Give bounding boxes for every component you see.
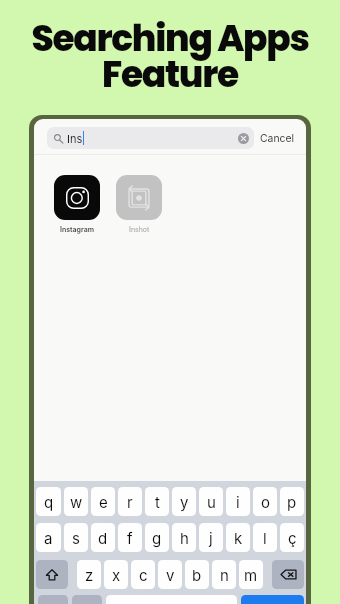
button[interactable]: Inshot (116, 175, 162, 233)
staticText: Instagram (60, 225, 95, 233)
button[interactable]: w (64, 487, 88, 516)
button[interactable]: u (199, 487, 223, 516)
staticText: g (152, 529, 162, 547)
button[interactable]: n (212, 560, 236, 589)
staticText: q (44, 493, 54, 511)
button[interactable]: Clear search text (238, 133, 249, 144)
staticText: i (236, 493, 240, 511)
staticText: y (180, 493, 189, 511)
button[interactable]: b (185, 560, 209, 589)
staticText: ç (288, 529, 297, 547)
button[interactable]: Numbers and symbols (38, 595, 68, 604)
button[interactable]: Instagram (54, 175, 100, 233)
button[interactable]: q (36, 487, 61, 516)
button[interactable]: x (104, 560, 128, 589)
button[interactable]: f (118, 523, 142, 552)
staticText: w (70, 493, 83, 511)
button[interactable]: s (64, 523, 88, 552)
staticText: c (139, 566, 148, 584)
staticText: k (234, 529, 243, 547)
button[interactable]: t (145, 487, 169, 516)
staticText: e (99, 493, 108, 511)
staticText: l (263, 529, 267, 547)
staticText: u (207, 493, 216, 511)
staticText: o (261, 493, 270, 511)
staticText: t (155, 493, 160, 511)
staticText: r (127, 493, 133, 511)
button[interactable]: v (158, 560, 182, 589)
button[interactable]: c (131, 560, 155, 589)
staticText: b (192, 566, 202, 584)
staticText: f (127, 529, 133, 547)
staticText: Inshot (129, 225, 150, 233)
staticText: j (209, 529, 213, 547)
button[interactable]: Cancel (260, 132, 295, 145)
button[interactable]: Space (106, 595, 237, 604)
button[interactable]: z (77, 560, 101, 589)
button[interactable]: p (280, 487, 304, 516)
staticText: p (287, 493, 297, 511)
button[interactable]: e (91, 487, 115, 516)
button[interactable]: g (145, 523, 169, 552)
staticText: z (85, 566, 94, 584)
button[interactable]: i (226, 487, 250, 516)
button[interactable]: y (172, 487, 196, 516)
button[interactable]: ç (280, 523, 304, 552)
button[interactable]: Shift (36, 560, 68, 589)
staticText: h (180, 529, 189, 547)
staticText: Cancel (260, 132, 295, 145)
button[interactable]: Emoji keyboard (72, 595, 102, 604)
button[interactable]: r (118, 487, 142, 516)
staticText: Ins (67, 132, 83, 145)
button[interactable]: a (36, 523, 61, 552)
staticText: n (220, 566, 229, 584)
staticText: Searching Apps (31, 13, 309, 63)
staticText: d (98, 529, 108, 547)
button[interactable]: Backspace (272, 560, 304, 589)
staticText: m (244, 566, 258, 584)
button[interactable]: h (172, 523, 196, 552)
button[interactable]: d (91, 523, 115, 552)
button[interactable]: o (253, 487, 277, 516)
button[interactable]: j (199, 523, 223, 552)
button[interactable]: Ins (47, 127, 254, 149)
staticText: a (44, 529, 53, 547)
button[interactable]: Search (241, 595, 304, 604)
staticText: s (72, 529, 80, 547)
button[interactable]: m (239, 560, 263, 589)
staticText: v (166, 566, 175, 584)
button[interactable]: k (226, 523, 250, 552)
staticText: x (112, 566, 121, 584)
button[interactable]: l (253, 523, 277, 552)
staticText: Feature (102, 49, 238, 99)
